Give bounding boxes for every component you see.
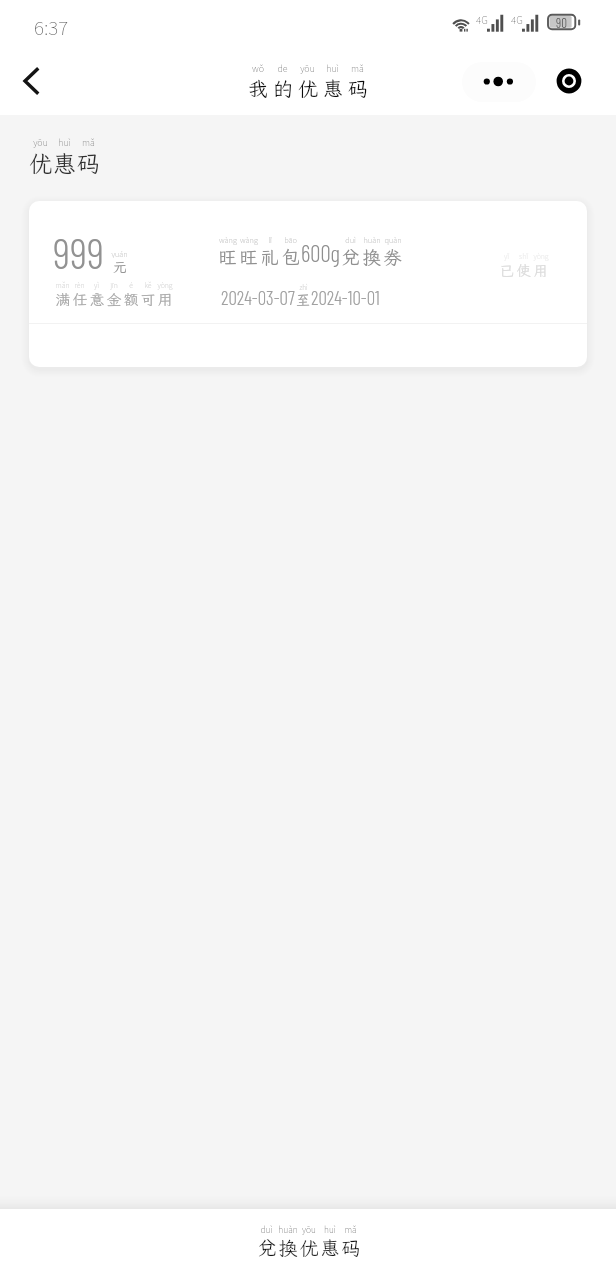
staticText: 旺 <box>239 245 258 269</box>
staticText: huàn <box>278 1223 298 1235</box>
staticText: duì <box>260 1223 273 1235</box>
staticText: 码 <box>341 1235 361 1260</box>
staticText: 已 <box>499 261 514 280</box>
staticText: 额 <box>123 290 139 310</box>
staticText: jīn <box>110 280 118 290</box>
staticText: 600g <box>301 239 340 267</box>
staticText: kě <box>144 280 152 290</box>
staticText: é <box>129 280 133 290</box>
staticText: 惠 <box>320 1235 340 1260</box>
staticText: shǐ <box>519 251 528 261</box>
staticText: huàn <box>363 234 381 245</box>
staticText: 用 <box>533 261 548 280</box>
staticText: mǎ <box>351 62 364 75</box>
staticText: duì <box>345 234 356 245</box>
staticText: 6:37 <box>34 13 69 41</box>
staticText: mǎn <box>55 280 70 290</box>
staticText: 的 <box>273 75 293 101</box>
staticText: wǒ <box>252 62 264 75</box>
staticText: 金 <box>106 290 122 310</box>
staticText: 优 <box>299 1235 319 1260</box>
staticText: 意 <box>89 290 105 310</box>
staticText: yōu <box>33 136 48 148</box>
staticText: 元 <box>113 258 127 276</box>
staticText: huì <box>326 62 339 75</box>
staticText: 999 <box>53 226 104 278</box>
staticText: 用 <box>157 290 173 310</box>
staticText: 2024-10-01 <box>311 286 380 309</box>
staticText: 惠 <box>53 148 76 178</box>
staticText: 码 <box>77 148 100 178</box>
staticText: huì <box>58 136 71 148</box>
staticText: wàng <box>240 234 258 245</box>
staticText: bāo <box>284 234 297 245</box>
staticText: 4G <box>511 12 523 26</box>
staticText: 90 <box>556 15 567 31</box>
staticText: 兑 <box>257 1235 277 1260</box>
staticText: 券 <box>383 245 402 269</box>
staticText: zhì <box>299 282 308 291</box>
staticText: mǎ <box>82 136 95 148</box>
staticText: de <box>277 62 288 75</box>
button[interactable]: duì <box>0 1209 616 1280</box>
staticText: 使 <box>516 261 531 280</box>
button[interactable]: More options <box>462 62 536 102</box>
staticText: 换 <box>362 245 381 269</box>
staticText: lǐ <box>268 234 272 245</box>
staticText: 包 <box>281 245 300 269</box>
staticText: 我 <box>248 75 268 101</box>
staticText: yì <box>94 280 99 290</box>
staticText: wàng <box>219 234 237 245</box>
staticText: 至 <box>296 291 310 309</box>
staticText: rèn <box>74 280 85 290</box>
staticText: 优 <box>29 148 52 178</box>
staticText: 4G <box>476 12 488 26</box>
staticText: 满 <box>55 290 71 310</box>
staticText: 礼 <box>260 245 279 269</box>
staticText: 换 <box>278 1235 298 1260</box>
staticText: mǎ <box>344 1223 357 1235</box>
staticText: 可 <box>140 290 156 310</box>
staticText: 码 <box>348 75 368 101</box>
staticText: yōu <box>302 1223 316 1235</box>
staticText: 任 <box>72 290 88 310</box>
staticText: 旺 <box>218 245 237 269</box>
staticText: yuán <box>111 248 128 258</box>
staticText: 兑 <box>341 245 360 269</box>
staticText: huì <box>324 1223 336 1235</box>
staticText: yǐ <box>504 251 509 261</box>
button[interactable]: Close mini program <box>552 64 586 98</box>
button[interactable]: Back <box>7 57 55 105</box>
staticText: 优 <box>298 75 318 101</box>
staticText: 2024-03-07 <box>221 286 295 309</box>
staticText: yòng <box>533 251 549 261</box>
staticText: 惠 <box>323 75 343 101</box>
staticText: yòng <box>157 280 173 290</box>
staticText: quàn <box>384 234 402 245</box>
button[interactable]: 999 <box>29 201 587 367</box>
staticText: yōu <box>300 62 315 75</box>
